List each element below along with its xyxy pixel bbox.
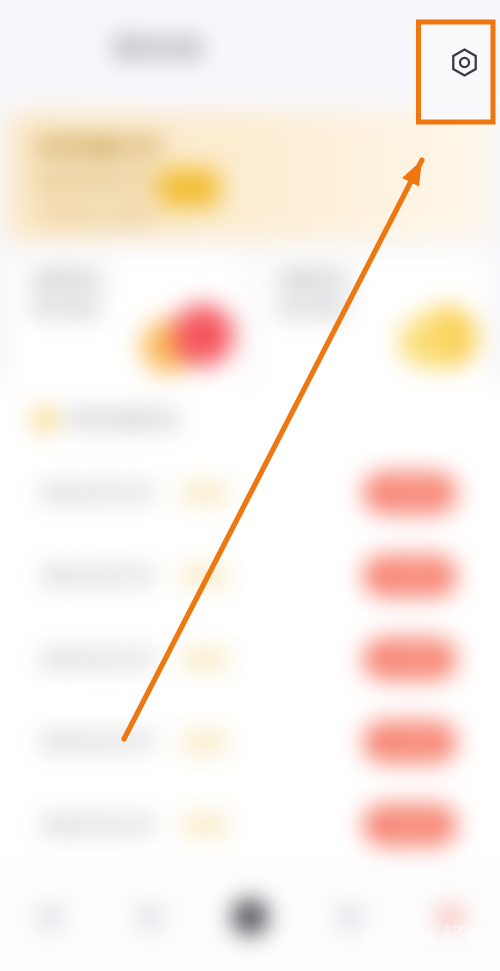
button[interactable]: 立即查看 (364, 473, 456, 513)
staticText: 建议检查保养 (35, 169, 155, 194)
staticText: 立即查看 (380, 484, 440, 503)
button[interactable]: Explore (100, 904, 200, 938)
staticText: 剩余电量 (32, 298, 100, 319)
staticText: 常用功能列表 (65, 408, 179, 432)
button[interactable]: 设备信息记录 (0, 617, 500, 700)
button[interactable]: Home (0, 904, 100, 938)
button[interactable]: 设备信息记录 (0, 783, 500, 866)
staticText: 我的设备 (112, 33, 204, 62)
staticText: 立即查看 (380, 816, 440, 835)
button[interactable]: 设备信息记录 (0, 451, 500, 534)
staticText: 立即查看 (380, 567, 440, 586)
staticText: Baidu 经验 (364, 919, 492, 953)
button[interactable]: 立即查看 (364, 722, 456, 762)
button[interactable]: 设备信息记录 (0, 700, 500, 783)
button[interactable]: 立即查看 (364, 805, 456, 845)
button[interactable]: Profile (400, 904, 500, 938)
button[interactable]: 电量状态 (256, 254, 490, 388)
staticText: 设备信息记录 (40, 730, 154, 754)
staticText: 电量状态 (278, 268, 350, 291)
button[interactable]: 设备信息记录 (0, 534, 500, 617)
staticText: 电量状态 (32, 268, 104, 291)
button[interactable]: Settings (444, 42, 484, 82)
staticText: 立即查看 (380, 650, 440, 669)
button[interactable]: Scan (200, 900, 300, 942)
button[interactable]: 立即查看 (364, 639, 456, 679)
button[interactable]: 保养提醒记录 (8, 112, 492, 240)
staticText: 立即前往查看 (35, 203, 155, 228)
button[interactable]: 立即查看 (364, 556, 456, 596)
staticText: 立即查看 (380, 733, 440, 752)
button[interactable]: 电量状态 (10, 254, 244, 388)
staticText: 剩余电量 (278, 298, 346, 319)
staticText: 保养提醒记录 (35, 134, 161, 160)
button[interactable]: Settings (419, 22, 493, 122)
button[interactable]: Messages (300, 904, 400, 938)
